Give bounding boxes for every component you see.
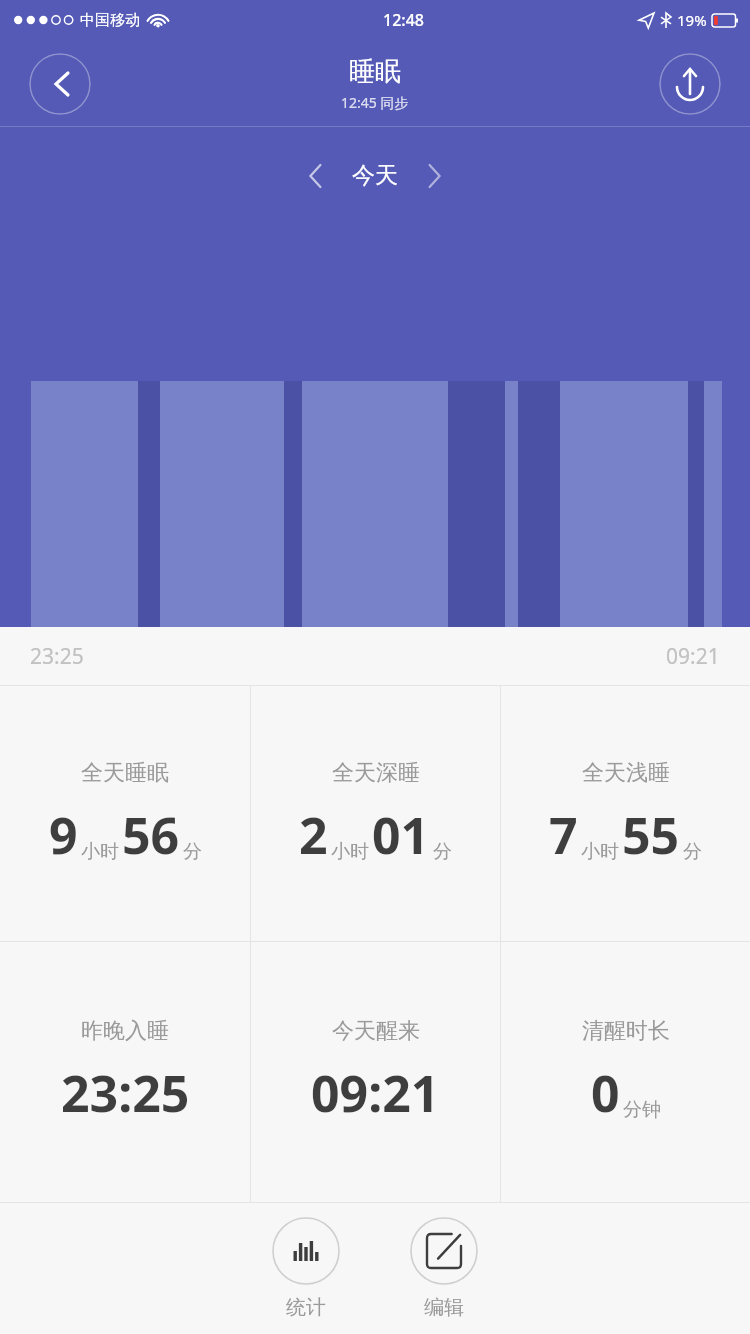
staticText: 昨晚入睡 xyxy=(81,1017,169,1045)
button[interactable]: 今天 xyxy=(306,161,444,190)
staticText: 统计 xyxy=(286,1295,326,1320)
button[interactable]: 清醒时长 xyxy=(501,942,750,1202)
staticText: 2 xyxy=(299,801,328,869)
button[interactable]: 全天浅睡 xyxy=(501,686,750,941)
staticText: 56 xyxy=(122,801,180,869)
staticText: 分 xyxy=(183,840,202,864)
staticText: 分 xyxy=(433,840,452,864)
staticText: 23:25 xyxy=(30,642,84,671)
button[interactable]: 全天深睡 xyxy=(251,686,500,941)
staticText: 09:21 xyxy=(666,642,720,671)
staticText: 全天浅睡 xyxy=(582,759,670,787)
button[interactable]: Share xyxy=(659,53,721,115)
staticText: 分 xyxy=(683,840,702,864)
staticText: 7 xyxy=(549,801,578,869)
button[interactable]: 昨晚入睡 xyxy=(0,942,250,1202)
staticText: 小时 xyxy=(581,840,619,864)
staticText: 今天 xyxy=(352,161,398,190)
staticText: 中国移动 xyxy=(80,11,140,30)
button[interactable]: 今天醒来 xyxy=(251,942,500,1202)
staticText: 编辑 xyxy=(424,1295,464,1320)
staticText: 全天睡眠 xyxy=(81,759,169,787)
staticText: 今天醒来 xyxy=(332,1017,420,1045)
staticText: 小时 xyxy=(81,840,119,864)
staticText: 12:45 同步 xyxy=(341,93,409,112)
staticText: 09:21 xyxy=(311,1059,440,1127)
staticText: 01 xyxy=(372,801,430,869)
staticText: 9 xyxy=(49,801,78,869)
button[interactable]: 统计 xyxy=(268,1213,344,1324)
staticText: 12:48 xyxy=(383,9,424,31)
staticText: 睡眠 xyxy=(349,55,401,88)
staticText: 分钟 xyxy=(623,1098,661,1122)
staticText: 小时 xyxy=(331,840,369,864)
button[interactable]: 编辑 xyxy=(406,1213,482,1324)
button[interactable]: Back xyxy=(29,53,91,115)
staticText: 全天深睡 xyxy=(332,759,420,787)
staticText: 23:25 xyxy=(61,1059,190,1127)
staticText: 19% xyxy=(677,10,707,30)
staticText: 55 xyxy=(622,801,680,869)
staticText: 清醒时长 xyxy=(582,1017,670,1045)
button[interactable]: 全天睡眠 xyxy=(0,686,250,941)
staticText: 0 xyxy=(591,1059,620,1127)
